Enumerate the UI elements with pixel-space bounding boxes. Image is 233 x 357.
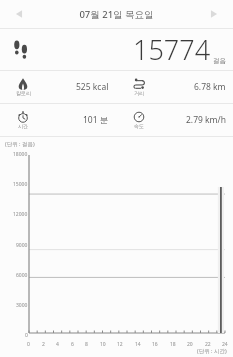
button[interactable]: 15774 [0,29,233,70]
staticText: 15774 [133,31,211,68]
button[interactable]: 시간 [0,104,116,136]
staticText: 6000 [16,272,28,279]
staticText: 9000 [16,242,28,249]
staticText: 0 [25,332,28,339]
staticText: 걸음 [213,57,226,65]
staticText: 6.78 km [194,81,226,93]
staticText: 18 [170,341,176,348]
staticText: 8 [85,341,88,348]
staticText: 3000 [16,302,28,309]
staticText: 07월 21일 목요일 [79,8,154,21]
staticText: 0 [27,341,30,348]
staticText: 16 [152,341,158,348]
staticText: 20 [187,341,193,348]
staticText: 2.79 km/h [186,114,226,126]
staticText: (단위 : 걸음) [5,140,35,148]
staticText: (단위 : 시간) [197,347,227,355]
staticText: 22 [205,341,211,348]
staticText: 101 분 [83,114,109,126]
staticText: 15000 [13,181,28,188]
staticText: 속도 [134,123,144,129]
button[interactable]: 거리 [116,71,233,103]
staticText: 10 [100,341,106,348]
staticText: 12 [117,341,123,348]
staticText: 시간 [18,123,28,129]
staticText: 12000 [13,211,28,218]
staticText: 6 [71,341,74,348]
button[interactable]: 칼로리 [0,71,116,103]
staticText: 24 [222,341,228,348]
staticText: 14 [135,341,141,348]
button[interactable]: Next day [203,3,225,25]
staticText: 거리 [134,90,144,96]
staticText: 4 [56,341,59,348]
staticText: 525 kcal [76,81,109,93]
button[interactable]: 속도 [116,104,233,136]
staticText: 18000 [13,151,28,158]
staticText: 2 [42,341,45,348]
button[interactable]: Previous day [8,3,30,25]
staticText: 칼로리 [16,90,31,96]
